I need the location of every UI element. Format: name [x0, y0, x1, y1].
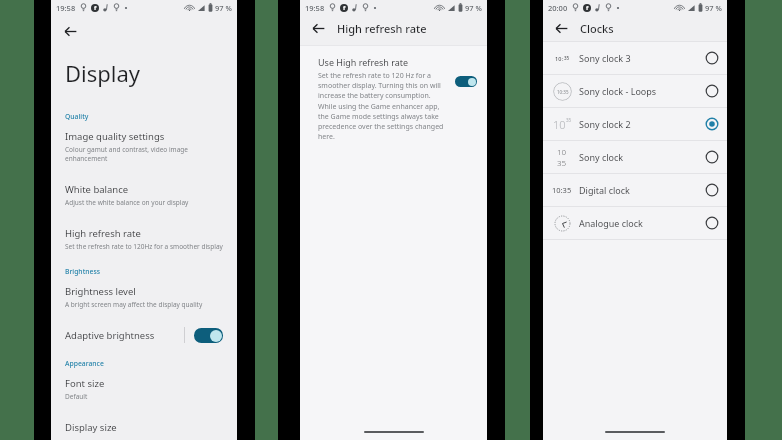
button[interactable]: Adaptive brightness	[51, 321, 237, 349]
staticText: 20:00	[548, 3, 568, 13]
button[interactable]: Display size	[51, 415, 237, 440]
button[interactable]: Back	[548, 15, 574, 41]
staticText: Digital clock	[579, 184, 705, 196]
button[interactable]: Back	[57, 18, 83, 44]
staticText: Image quality settings	[65, 130, 165, 143]
staticText: 10	[553, 117, 566, 132]
staticText: Sony clock	[579, 151, 705, 163]
staticText: 35	[557, 157, 567, 168]
staticText: f	[586, 4, 589, 12]
staticText: f	[94, 4, 97, 12]
staticText: 35	[566, 117, 572, 123]
staticText: Appearance	[65, 359, 104, 368]
staticText: High refresh rate	[65, 227, 141, 240]
staticText: 10	[557, 146, 567, 157]
staticText: Set the refresh rate to 120Hz for a smoo…	[65, 242, 223, 251]
staticText: 10	[555, 55, 562, 62]
button[interactable]: Font size	[51, 371, 237, 407]
staticText: 35	[564, 55, 570, 61]
button[interactable]: 10	[543, 108, 727, 140]
button[interactable]: Back	[305, 15, 331, 41]
staticText: Brightness	[65, 267, 101, 276]
staticText: Default	[65, 392, 88, 401]
staticText: Quality	[65, 112, 89, 121]
button[interactable]: Analogue clock	[543, 207, 727, 239]
staticText: 19:58	[305, 3, 325, 13]
button[interactable]: Use High refresh rate	[300, 46, 487, 142]
staticText: Colour gamut and contrast, video image e…	[65, 145, 223, 163]
staticText: Analogue clock	[579, 217, 705, 229]
staticText: 97 %	[215, 3, 232, 13]
button[interactable]: 10	[543, 141, 727, 173]
staticText: Use High refresh rate	[318, 56, 409, 68]
staticText: Font size	[65, 377, 105, 390]
staticText: f	[343, 4, 346, 12]
button[interactable]: Brightness level	[51, 279, 237, 315]
button[interactable]: High refresh rate	[51, 221, 237, 257]
staticText: Display size	[65, 421, 117, 434]
button[interactable]: 10	[543, 42, 727, 74]
staticText: Brightness level	[65, 285, 136, 298]
button[interactable]: Toggle	[194, 328, 223, 343]
staticText: 10:35	[552, 185, 572, 195]
staticText: Set the refresh rate to 120 Hz for a smo…	[318, 71, 449, 101]
button[interactable]: White balance	[51, 177, 237, 213]
staticText: White balance	[65, 183, 129, 196]
staticText: Sony clock 3	[579, 52, 705, 64]
staticText: Adaptive brightness	[65, 329, 184, 342]
button[interactable]: Image quality settings	[51, 124, 237, 169]
staticText: :	[562, 55, 564, 62]
staticText: Sony clock - Loops	[579, 85, 705, 97]
staticText: 19:58	[56, 3, 76, 13]
staticText: 97 %	[705, 3, 722, 13]
staticText: High refresh rate	[337, 21, 427, 36]
button[interactable]: 10:35	[543, 75, 727, 107]
staticText: Sony clock 2	[579, 118, 705, 130]
staticText: Clocks	[580, 21, 614, 36]
button[interactable]: 10:35	[543, 174, 727, 206]
staticText: 10:35	[557, 89, 569, 95]
staticText: 97 %	[465, 3, 482, 13]
button[interactable]: Toggle	[455, 76, 477, 87]
staticText: Adjust the white balance on your display	[65, 198, 189, 207]
staticText: Display	[65, 58, 141, 88]
staticText: While using the Game enhancer app, the G…	[318, 102, 449, 142]
staticText: A bright screen may affect the display q…	[65, 300, 203, 309]
